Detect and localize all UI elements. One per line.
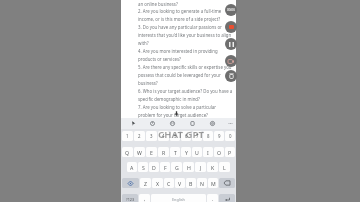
- button[interactable]: Shift: [122, 178, 139, 188]
- button[interactable]: 2: [134, 131, 145, 141]
- button[interactable]: Stickers: [124, 118, 142, 129]
- button[interactable]: Z: [140, 178, 151, 188]
- staticText: L: [223, 164, 226, 171]
- staticText: Z: [144, 180, 147, 187]
- button[interactable]: C: [164, 178, 174, 188]
- button[interactable]: R: [158, 147, 169, 157]
- button[interactable]: Screenshot: [225, 55, 237, 67]
- button[interactable]: 6: [181, 131, 191, 141]
- staticText: 5: [174, 133, 177, 139]
- button[interactable]: I: [203, 147, 213, 157]
- staticText: 1: [126, 133, 129, 139]
- staticText: 8: [207, 133, 210, 139]
- staticText: 2: [138, 133, 141, 139]
- staticText: 0: [229, 133, 232, 139]
- button[interactable]: Scroll to bottom: [171, 108, 182, 119]
- button[interactable]: 8: [203, 131, 213, 141]
- staticText: N: [200, 180, 204, 187]
- button[interactable]: G: [171, 162, 182, 172]
- button[interactable]: F: [160, 162, 170, 172]
- staticText: 9: [218, 133, 221, 139]
- button[interactable]: 5: [170, 131, 180, 141]
- staticText: A: [130, 164, 134, 171]
- button[interactable]: M: [208, 178, 218, 188]
- staticText: K: [211, 164, 215, 171]
- staticText: CHAT GPT: [158, 128, 204, 141]
- staticText: .: [212, 196, 214, 202]
- staticText: Y: [185, 149, 188, 156]
- button[interactable]: T: [170, 147, 180, 157]
- button[interactable]: More options: [221, 118, 239, 129]
- button[interactable]: GIF: [143, 118, 161, 129]
- button[interactable]: Emoji: [163, 118, 181, 129]
- button[interactable]: W: [134, 147, 145, 157]
- staticText: V: [178, 180, 182, 187]
- staticText: E: [150, 149, 153, 156]
- staticText: P: [228, 149, 232, 156]
- button[interactable]: D: [149, 162, 159, 172]
- button[interactable]: 4: [158, 131, 169, 141]
- staticText: J: [200, 164, 202, 171]
- button[interactable]: .: [207, 194, 218, 202]
- button[interactable]: S: [138, 162, 148, 172]
- button[interactable]: English: [151, 194, 206, 202]
- staticText: M: [211, 180, 216, 187]
- button[interactable]: Clipboard: [183, 118, 201, 129]
- staticText: 7: [196, 133, 199, 139]
- button[interactable]: V: [175, 178, 185, 188]
- button[interactable]: B: [186, 178, 196, 188]
- staticText: S: [142, 164, 145, 171]
- staticText: T: [174, 149, 177, 156]
- button[interactable]: 7: [192, 131, 202, 141]
- staticText: ?123: [126, 197, 135, 202]
- staticText: B: [189, 180, 193, 187]
- button[interactable]: Stop recording: [225, 21, 237, 33]
- button[interactable]: Backspace: [219, 178, 235, 188]
- staticText: 3: [150, 133, 153, 139]
- button[interactable]: L: [219, 162, 230, 172]
- button[interactable]: J: [195, 162, 206, 172]
- button[interactable]: N: [197, 178, 207, 188]
- staticText: U: [195, 149, 199, 156]
- button[interactable]: Recording timer: [225, 4, 237, 16]
- staticText: an online business? 2. Are you looking t…: [138, 1, 233, 118]
- staticText: ,: [144, 196, 146, 202]
- button[interactable]: Settings: [203, 118, 221, 129]
- staticText: English: [172, 197, 185, 202]
- staticText: 6: [185, 133, 188, 139]
- button[interactable]: 1: [122, 131, 133, 141]
- staticText: 4: [162, 133, 165, 139]
- button[interactable]: Pause recording: [225, 38, 237, 50]
- staticText: X: [156, 180, 160, 187]
- staticText: I: [207, 149, 209, 156]
- button[interactable]: Enter: [219, 194, 235, 202]
- button[interactable]: Symbols: [122, 194, 138, 202]
- button[interactable]: 3: [146, 131, 157, 141]
- button[interactable]: Delete recording: [225, 70, 237, 82]
- button[interactable]: O: [214, 147, 224, 157]
- staticText: F: [164, 164, 167, 171]
- staticText: G: [175, 164, 179, 171]
- button[interactable]: Y: [181, 147, 191, 157]
- button[interactable]: U: [192, 147, 202, 157]
- staticText: D: [152, 164, 156, 171]
- button[interactable]: K: [207, 162, 218, 172]
- button[interactable]: P: [225, 147, 235, 157]
- staticText: R: [162, 149, 166, 156]
- button[interactable]: Q: [122, 147, 133, 157]
- staticText: W: [137, 149, 142, 156]
- button[interactable]: ,: [139, 194, 150, 202]
- button[interactable]: 0: [225, 131, 235, 141]
- button[interactable]: H: [183, 162, 194, 172]
- staticText: Q: [125, 149, 130, 156]
- button[interactable]: A: [127, 162, 137, 172]
- staticText: C: [167, 180, 171, 187]
- button[interactable]: E: [146, 147, 157, 157]
- staticText: H: [187, 164, 191, 171]
- button[interactable]: 9: [214, 131, 224, 141]
- staticText: 00:06: [227, 8, 235, 12]
- staticText: O: [217, 149, 222, 156]
- button[interactable]: X: [152, 178, 163, 188]
